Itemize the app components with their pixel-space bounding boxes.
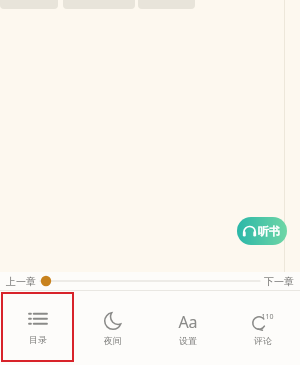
- staticText: 目录: [29, 334, 47, 345]
- button[interactable]: 下一章: [262, 275, 296, 288]
- button[interactable]: Table of contents: [1, 292, 74, 362]
- other: Listen to book: [243, 225, 256, 238]
- button[interactable]: Aa: [150, 291, 225, 365]
- button[interactable]: [38, 272, 262, 290]
- staticText: 上一章: [6, 275, 36, 288]
- button[interactable]: Comments: [225, 291, 300, 365]
- button[interactable]: Night mode: [75, 291, 150, 365]
- staticText: 夜间: [104, 335, 122, 346]
- staticText: 下一章: [264, 275, 294, 288]
- other: Comments: [252, 316, 266, 330]
- staticText: 设置: [179, 335, 197, 346]
- button[interactable]: 上一章: [4, 275, 38, 288]
- staticText: 听书: [258, 224, 280, 238]
- staticText: Aa: [178, 311, 198, 331]
- other: Night mode: [104, 312, 122, 330]
- staticText: 110: [261, 312, 274, 322]
- other: Table of contents: [29, 311, 47, 329]
- staticText: 评论: [254, 335, 272, 346]
- button[interactable]: Listen to book: [237, 217, 287, 245]
